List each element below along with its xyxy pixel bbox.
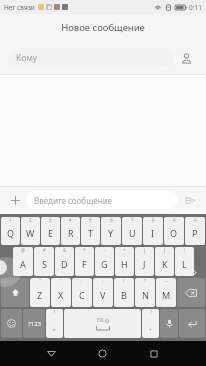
- staticText: :: [81, 278, 83, 284]
- staticText: X: [58, 289, 64, 301]
- staticText: &: [63, 247, 67, 253]
- button[interactable]: !: [46, 309, 63, 338]
- button[interactable]: Последние приложения: [137, 341, 170, 366]
- staticText: ?: [150, 309, 152, 315]
- button[interactable]: Назад: [35, 341, 68, 366]
- staticText: 1: [9, 217, 12, 223]
- staticText: 4: [69, 217, 72, 223]
- button[interactable]: 1: [1, 217, 20, 245]
- button[interactable]: Символы: [23, 309, 45, 338]
- button[interactable]: 0: [185, 217, 205, 245]
- staticText: 9: [173, 217, 176, 223]
- button[interactable]: 6: [101, 217, 121, 245]
- button[interactable]: Ввод: [179, 309, 205, 338]
- button[interactable]: !: [175, 247, 194, 276]
- staticText: P: [192, 227, 198, 239]
- staticText: S: [42, 258, 47, 270]
- button[interactable]: 4: [61, 217, 80, 245]
- staticText: F: [82, 258, 87, 270]
- staticText: M: [162, 289, 171, 301]
- staticText: Нет связи: [4, 3, 35, 12]
- staticText: 7: [131, 217, 134, 223]
- button[interactable]: Введите сообщение: [26, 191, 178, 209]
- staticText: @: [21, 247, 26, 253]
- staticText: !: [54, 309, 56, 315]
- staticText: /: [123, 278, 125, 284]
- button[interactable]: #: [34, 247, 54, 276]
- staticText: ;: [102, 278, 104, 284]
- staticText: -: [104, 247, 106, 253]
- button[interactable]: Добавить вложение: [4, 189, 26, 211]
- button[interactable]: Кому: [8, 48, 174, 67]
- button[interactable]: Выбрать контакт: [174, 46, 198, 70]
- staticText: O: [170, 227, 178, 239]
- button[interactable]: (: [135, 247, 154, 276]
- staticText: W: [26, 227, 35, 239]
- staticText: 0: [194, 217, 197, 223]
- staticText: Q: [7, 227, 15, 239]
- staticText: I: [151, 227, 155, 239]
- staticText: Введите сообщение: [34, 195, 113, 206]
- button[interactable]: +: [115, 247, 134, 276]
- staticText: 0:11: [189, 3, 202, 12]
- staticText: Y: [108, 227, 114, 239]
- button[interactable]: Backspace: [177, 278, 205, 307]
- button[interactable]: ): [155, 247, 174, 276]
- button[interactable]: ": [30, 278, 50, 307]
- staticText: G: [101, 258, 108, 270]
- button[interactable]: 7: [122, 217, 142, 245]
- staticText: #: [43, 247, 46, 253]
- button[interactable]: Эмодзи: [1, 309, 22, 338]
- staticText: ): [164, 247, 166, 253]
- button[interactable]: ': [51, 278, 71, 307]
- button[interactable]: Голосовой ввод: [160, 309, 178, 338]
- staticText: ?: [144, 278, 146, 284]
- button[interactable]: 9: [164, 217, 184, 245]
- staticText: +: [123, 247, 126, 253]
- staticText: ?123: [28, 320, 41, 328]
- staticText: N: [142, 289, 149, 301]
- staticText: EN: [97, 317, 104, 324]
- staticText: .: [149, 320, 152, 332]
- staticText: Новое сообщение: [61, 21, 145, 34]
- staticText: V: [100, 289, 106, 301]
- staticText: C: [79, 289, 85, 301]
- button[interactable]: Пробел: [64, 309, 141, 338]
- button[interactable]: -: [95, 247, 114, 276]
- button[interactable]: @: [13, 247, 33, 276]
- staticText: ": [39, 278, 41, 284]
- staticText: (: [144, 247, 146, 253]
- button[interactable]: ;: [93, 278, 113, 307]
- button[interactable]: Главный экран: [86, 341, 119, 366]
- button[interactable]: ?: [142, 309, 159, 338]
- staticText: Z: [37, 289, 43, 301]
- staticText: Кому: [16, 52, 38, 64]
- staticText: J: [143, 258, 146, 270]
- staticText: ~: [165, 278, 168, 284]
- button[interactable]: 5: [81, 217, 100, 245]
- button[interactable]: /: [114, 278, 134, 307]
- button[interactable]: ?: [135, 278, 155, 307]
- staticText: !: [184, 247, 186, 253]
- button[interactable]: Отправить: [178, 188, 202, 212]
- staticText: 8: [152, 217, 155, 223]
- button[interactable]: &: [55, 247, 74, 276]
- button[interactable]: 3: [41, 217, 60, 245]
- staticText: L: [182, 258, 187, 270]
- staticText: H: [121, 258, 128, 270]
- staticText: 6: [110, 217, 113, 223]
- staticText: K: [162, 258, 168, 270]
- staticText: *: [83, 247, 86, 253]
- staticText: B: [121, 289, 127, 301]
- staticText: 2: [29, 217, 32, 223]
- button[interactable]: *: [75, 247, 94, 276]
- staticText: D: [61, 258, 68, 270]
- button[interactable]: 8: [143, 217, 163, 245]
- staticText: E: [48, 227, 54, 239]
- button[interactable]: Shift: [1, 278, 29, 307]
- staticText: ': [60, 278, 62, 284]
- staticText: 3: [49, 217, 52, 223]
- button[interactable]: 2: [21, 217, 40, 245]
- button[interactable]: :: [72, 278, 92, 307]
- button[interactable]: ~: [156, 278, 176, 307]
